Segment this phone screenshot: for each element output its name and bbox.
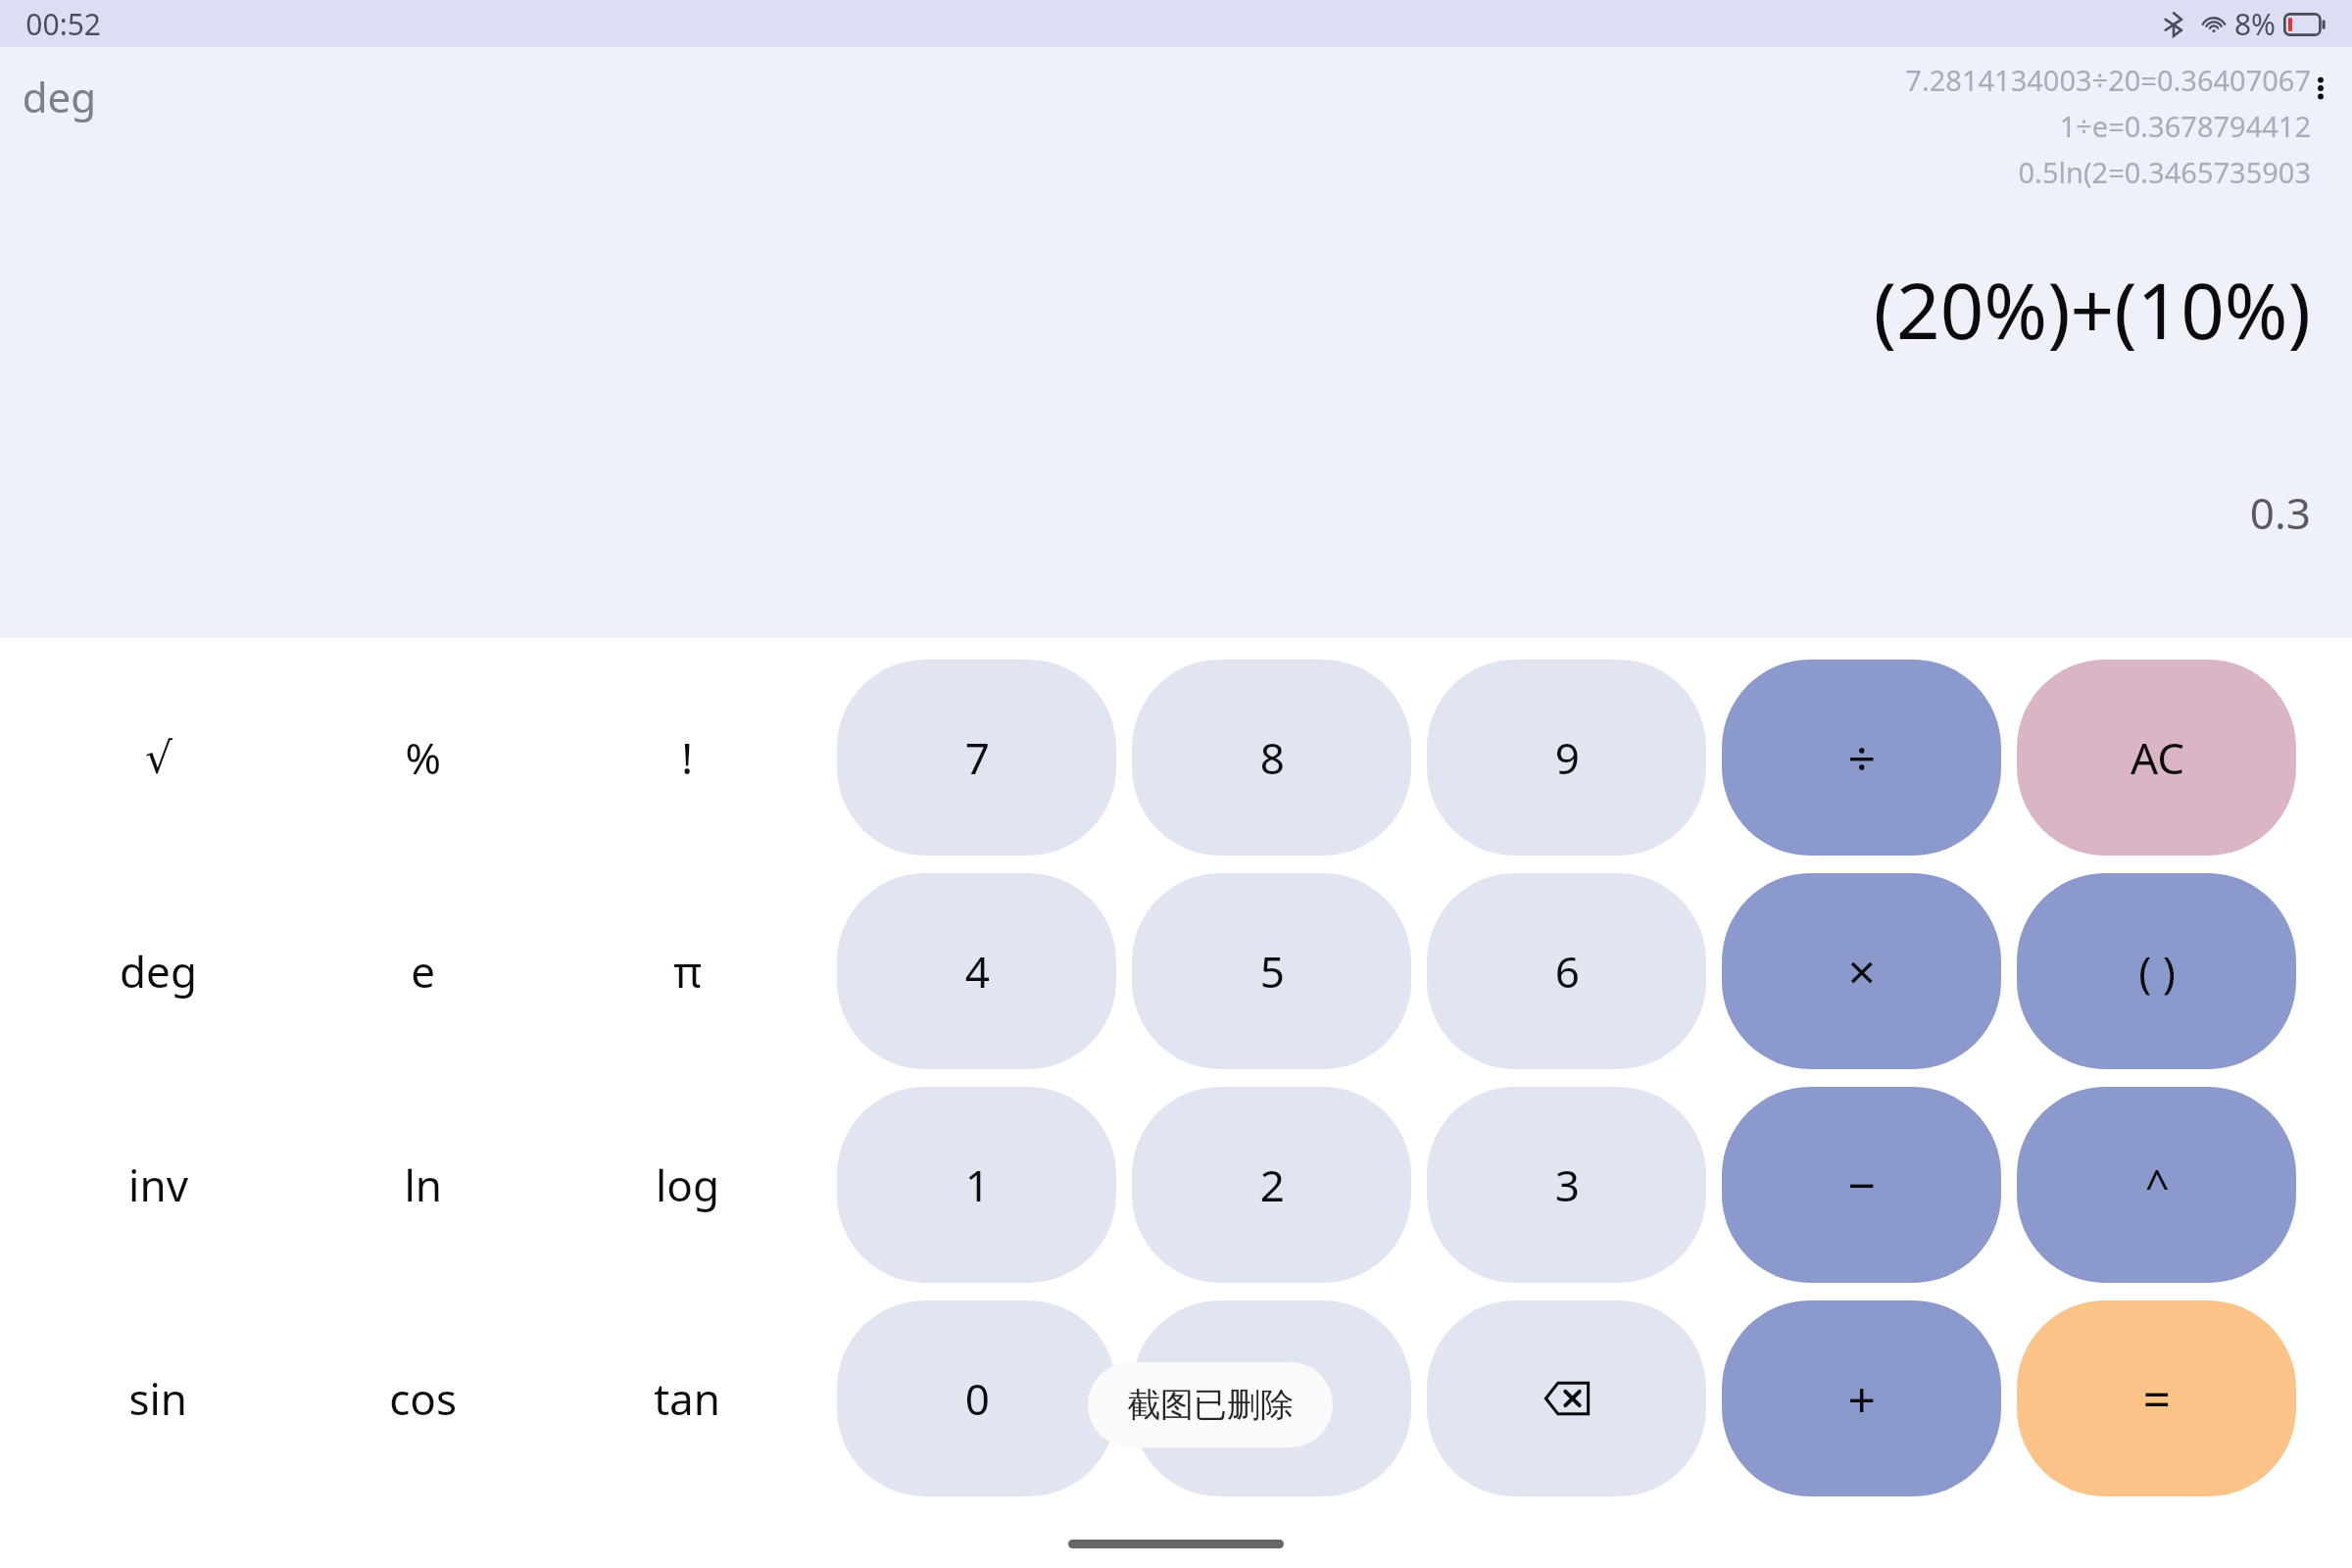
staticText: AC	[2130, 728, 2184, 787]
staticText: (20%)+(10%)	[1873, 258, 2311, 362]
button[interactable]: 5	[1132, 873, 1411, 1069]
staticText: 2	[1259, 1155, 1285, 1214]
button[interactable]: 9	[1427, 660, 1706, 856]
staticText: +	[1847, 1365, 1876, 1432]
staticText: 7.2814134003÷20=0.36407067	[1905, 61, 2311, 99]
staticText: 3	[1554, 1155, 1580, 1214]
button[interactable]: ÷	[1722, 660, 2001, 856]
staticText: deg	[22, 69, 96, 124]
button[interactable]: !	[555, 660, 819, 856]
button[interactable]: deg	[25, 873, 290, 1069]
button[interactable]: ×	[1722, 873, 2001, 1069]
staticText: ÷	[1847, 724, 1876, 791]
staticText: 9	[1554, 728, 1580, 787]
button[interactable]: −	[1722, 1087, 2001, 1283]
staticText: ×	[1847, 938, 1876, 1004]
button[interactable]: e	[290, 873, 555, 1069]
button[interactable]: 1	[837, 1087, 1116, 1283]
staticText: 5	[1259, 942, 1285, 1001]
staticText: deg	[120, 942, 197, 1001]
button[interactable]: More options	[2293, 61, 2348, 116]
staticText: 截图已删除	[1127, 1384, 1294, 1426]
button[interactable]: 0	[837, 1300, 1116, 1496]
staticText: inv	[128, 1155, 188, 1214]
staticText: π	[673, 942, 702, 1001]
staticText: 1÷e=0.3678794412	[2059, 107, 2311, 145]
button[interactable]: tan	[555, 1300, 819, 1496]
staticText: −	[1847, 1151, 1876, 1218]
staticText: 8	[1259, 728, 1285, 787]
staticText: 4	[964, 942, 990, 1001]
button[interactable]: 8	[1132, 660, 1411, 856]
staticText: 0.5ln(2=0.3465735903	[2018, 153, 2311, 191]
staticText: ln	[404, 1155, 442, 1214]
button[interactable]: ^	[2017, 1087, 2296, 1283]
staticText: 0.3	[2249, 483, 2311, 542]
button[interactable]: 2	[1132, 1087, 1411, 1283]
staticText: %	[405, 728, 441, 787]
staticText: cos	[389, 1369, 457, 1428]
staticText: log	[655, 1155, 719, 1214]
staticText: tan	[654, 1369, 720, 1428]
staticText: 7	[964, 728, 990, 787]
button[interactable]: ( )	[2017, 873, 2296, 1069]
staticText: •	[1264, 1372, 1280, 1425]
button[interactable]: 7	[837, 660, 1116, 856]
staticText: 6	[1554, 942, 1580, 1001]
staticText: √	[144, 733, 172, 783]
staticText: 8%	[2233, 4, 2276, 44]
staticText: 1	[964, 1155, 990, 1214]
button[interactable]: inv	[25, 1087, 290, 1283]
button[interactable]: %	[290, 660, 555, 856]
staticText: ^	[2144, 1155, 2170, 1214]
button[interactable]: cos	[290, 1300, 555, 1496]
staticText: sin	[128, 1369, 187, 1428]
staticText: 00:52	[25, 4, 101, 44]
button[interactable]: Backspace	[1427, 1300, 1706, 1496]
button[interactable]: π	[555, 873, 819, 1069]
button[interactable]: sin	[25, 1300, 290, 1496]
button[interactable]: +	[1722, 1300, 2001, 1496]
button[interactable]: AC	[2017, 660, 2296, 856]
staticText: !	[681, 728, 693, 787]
button[interactable]: 4	[837, 873, 1116, 1069]
button[interactable]: √	[25, 660, 290, 856]
staticText: =	[2142, 1365, 2171, 1432]
button[interactable]: =	[2017, 1300, 2296, 1496]
staticText: 0	[964, 1369, 990, 1428]
staticText: e	[411, 942, 435, 1001]
button[interactable]: ln	[290, 1087, 555, 1283]
button[interactable]: •	[1132, 1300, 1411, 1496]
button[interactable]: 3	[1427, 1087, 1706, 1283]
button[interactable]: log	[555, 1087, 819, 1283]
button[interactable]: 6	[1427, 873, 1706, 1069]
staticText: ( )	[2138, 942, 2176, 1001]
